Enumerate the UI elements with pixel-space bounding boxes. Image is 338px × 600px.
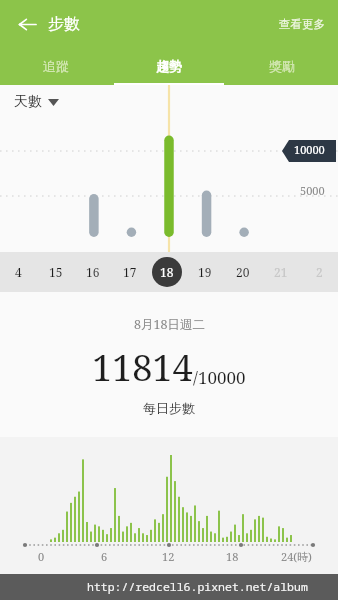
staticText: http://redcell6.pixnet.net/album	[87, 579, 308, 595]
button[interactable]: 獎勵	[225, 47, 338, 85]
staticText: 每日步數	[143, 400, 195, 416]
staticText: 趨勢	[156, 58, 182, 74]
staticText: 8月18日週二	[134, 316, 205, 333]
staticText: 18	[226, 549, 239, 564]
staticText: 4	[15, 264, 22, 280]
staticText: 獎勵	[269, 58, 295, 74]
button[interactable]: 2	[300, 252, 338, 292]
staticText: 查看更多	[279, 17, 325, 31]
staticText: 11814	[92, 343, 193, 392]
staticText: 15	[49, 264, 63, 280]
button[interactable]: 21	[262, 252, 300, 292]
staticText: 21	[274, 264, 288, 280]
staticText: 6	[101, 549, 108, 564]
staticText: 16	[86, 264, 100, 280]
staticText: 19	[198, 264, 212, 280]
button[interactable]: 天數	[14, 93, 59, 111]
button[interactable]: Back	[8, 5, 46, 43]
staticText: 步數	[48, 14, 80, 34]
button[interactable]: 查看更多	[266, 8, 338, 40]
staticText: 10000	[294, 142, 325, 157]
staticText: 追蹤	[43, 58, 69, 74]
staticText: /10000	[193, 366, 246, 389]
staticText: 5000	[300, 183, 325, 198]
staticText: 天數	[14, 93, 42, 111]
staticText: 0	[38, 549, 45, 564]
button[interactable]: 17	[111, 252, 148, 292]
button[interactable]: 20	[224, 252, 262, 292]
staticText: 20	[236, 264, 250, 280]
button[interactable]: 追蹤	[0, 47, 112, 85]
button[interactable]: 19	[186, 252, 224, 292]
button[interactable]: 18	[148, 252, 186, 292]
button[interactable]: 趨勢	[112, 47, 225, 85]
staticText: 17	[123, 264, 137, 280]
staticText: 12	[162, 549, 175, 564]
button[interactable]: 15	[37, 252, 74, 292]
button[interactable]: 4	[0, 252, 37, 292]
staticText: 2	[316, 264, 323, 280]
button[interactable]: 16	[74, 252, 111, 292]
staticText: 18	[160, 264, 174, 280]
staticText: 24(時)	[281, 549, 312, 564]
